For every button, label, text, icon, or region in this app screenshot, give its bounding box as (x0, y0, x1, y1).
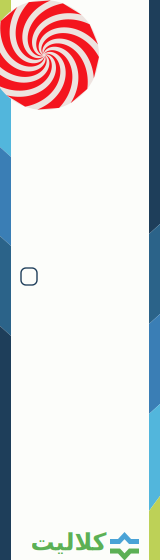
staticText: كلاليت (30, 528, 106, 556)
